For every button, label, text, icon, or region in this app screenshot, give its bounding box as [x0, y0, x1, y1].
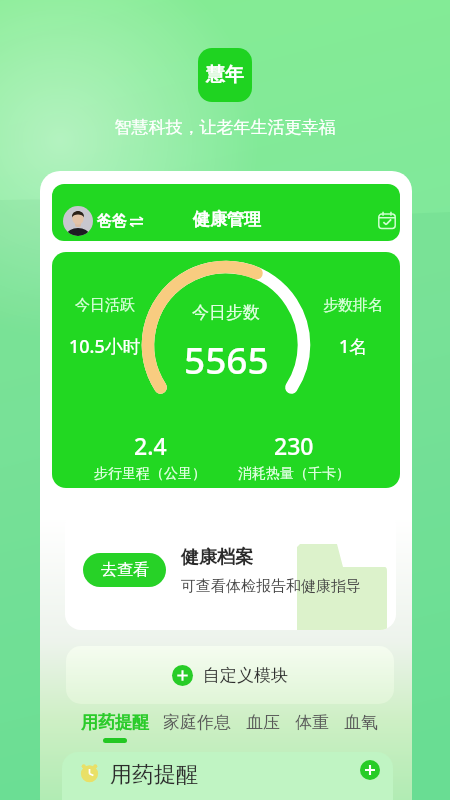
staticText: 慧年	[206, 63, 244, 87]
button[interactable]: 血压	[246, 712, 280, 738]
staticText: 爸爸	[97, 212, 127, 231]
staticText: 体重	[295, 712, 329, 733]
button[interactable]: 用药提醒	[62, 752, 393, 800]
staticText: 用药提醒	[81, 712, 149, 733]
staticText: 1名	[339, 334, 368, 359]
button[interactable]: 家庭作息	[163, 712, 231, 738]
staticText: 步数排名	[323, 296, 383, 315]
staticText: 消耗热量（千卡）	[238, 465, 350, 483]
other: Switch user	[130, 215, 143, 228]
staticText: 健康档案	[181, 546, 253, 569]
staticText: 今日活跃	[75, 296, 135, 315]
button[interactable]: 爸爸	[52, 184, 400, 241]
staticText: 步行里程（公里）	[94, 465, 206, 483]
button[interactable]: Add	[66, 646, 394, 704]
staticText: 230	[274, 430, 314, 461]
button[interactable]: 用药提醒	[81, 712, 149, 743]
staticText: 健康管理	[193, 209, 261, 230]
staticText: 自定义模块	[203, 665, 288, 686]
button[interactable]: 去查看	[65, 510, 396, 630]
staticText: 血压	[246, 712, 280, 733]
staticText: 2.4	[134, 430, 167, 461]
other: Add	[360, 760, 380, 780]
other: Add	[172, 665, 193, 686]
staticText: 10.5小时	[69, 334, 141, 359]
staticText: 用药提醒	[110, 761, 198, 789]
staticText: 今日步数	[192, 302, 260, 323]
button[interactable]: 去查看	[83, 553, 166, 587]
button[interactable]: 体重	[295, 712, 329, 738]
button[interactable]: Calendar	[378, 211, 396, 229]
staticText: 去查看	[101, 560, 149, 580]
staticText: 5565	[184, 334, 269, 384]
staticText: 家庭作息	[163, 712, 231, 733]
staticText: 可查看体检报告和健康指导	[181, 577, 361, 596]
staticText: 血氧	[344, 712, 378, 733]
button[interactable]: 血氧	[344, 712, 378, 738]
staticText: 智慧科技，让老年生活更幸福	[0, 117, 450, 138]
